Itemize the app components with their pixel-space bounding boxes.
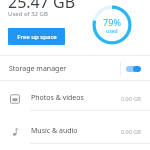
staticText: 25.47 GB [8,0,76,13]
staticText: Music & audio [31,126,78,136]
staticText: 0.00 GB [121,128,141,135]
button[interactable]: Storage manager toggle [121,58,146,79]
staticText: 0.00 GB [121,95,141,102]
staticText: Storage manager [9,64,67,74]
staticText: used [106,28,118,35]
button[interactable]: Photos & videos [0,88,150,108]
staticText: Used of 32 GB [8,10,48,18]
staticText: Free up space [17,33,57,41]
staticText: Photos & videos [31,93,84,103]
button[interactable]: Music & audio [0,121,150,141]
button[interactable]: Free up space [8,28,65,45]
button[interactable]: Storage manager [0,58,150,79]
staticText: 79% [103,16,121,28]
